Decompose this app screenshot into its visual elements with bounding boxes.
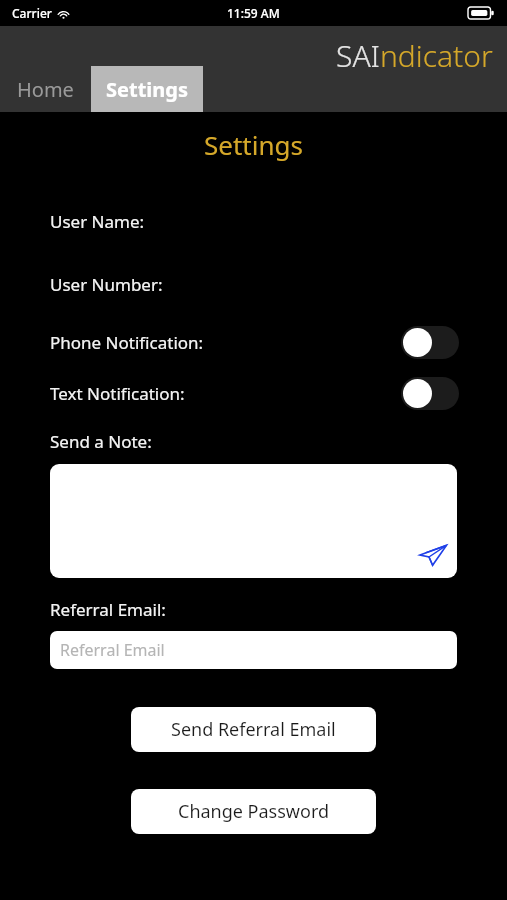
button[interactable]: Change Password: [131, 789, 376, 834]
staticText: Settings: [106, 76, 188, 103]
staticText: Settings: [204, 127, 303, 162]
staticText: Text Notification:: [50, 382, 185, 405]
staticText: User Number:: [50, 273, 163, 296]
staticText: Referral Email:: [50, 598, 166, 621]
button[interactable]: Send note: [414, 537, 450, 573]
button[interactable]: Home: [0, 66, 91, 112]
button[interactable]: Send note: [50, 464, 457, 578]
button[interactable]: Referral Email: [50, 631, 457, 669]
staticText: Phone Notification:: [50, 331, 204, 354]
button[interactable]: Send Referral Email: [131, 707, 376, 752]
staticText: Send a Note:: [50, 430, 152, 453]
staticText: Carrier: [12, 5, 52, 21]
staticText: 11:59 AM: [227, 5, 280, 21]
button[interactable]: Phone Notification:: [401, 326, 459, 359]
staticText: Change Password: [178, 799, 330, 824]
button[interactable]: Text Notification:: [401, 377, 459, 410]
staticText: Referral Email: [60, 639, 165, 661]
staticText: Home: [17, 76, 74, 103]
button[interactable]: Settings: [91, 66, 203, 112]
staticText: SAIndicator: [336, 35, 493, 76]
staticText: User Name:: [50, 210, 145, 233]
staticText: Send Referral Email: [171, 717, 336, 742]
